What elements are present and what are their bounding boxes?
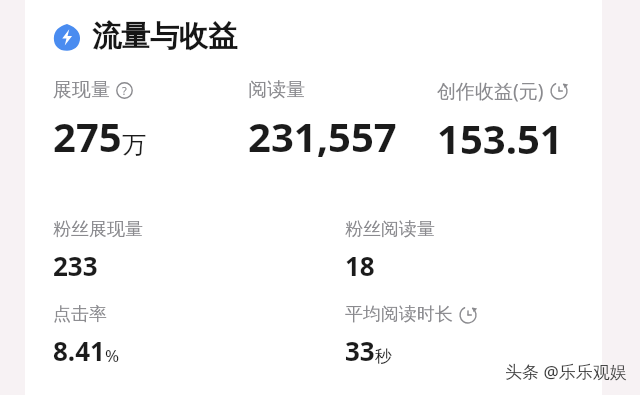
button[interactable]: Traffic and earnings <box>53 18 237 55</box>
staticText: 阅读量 <box>248 78 305 102</box>
button[interactable]: Help <box>116 82 133 99</box>
button[interactable]: 粉丝展现量 <box>53 218 143 283</box>
staticText: 秒 <box>375 346 392 367</box>
button[interactable]: History <box>459 306 477 324</box>
staticText: 18 <box>345 248 375 283</box>
staticText: 153.51 <box>437 111 563 165</box>
button[interactable]: 平均阅读时长 <box>345 303 477 368</box>
staticText: 创作收益(元) <box>437 78 544 104</box>
staticText: 平均阅读时长 <box>345 303 453 326</box>
staticText: 粉丝展现量 <box>53 218 143 241</box>
staticText: 231,557 <box>248 109 397 163</box>
staticText: % <box>105 344 120 367</box>
staticText: 流量与收益 <box>92 18 237 55</box>
staticText: 275 <box>53 109 122 163</box>
staticText: 点击率 <box>53 303 107 326</box>
button[interactable]: 粉丝阅读量 <box>345 218 435 283</box>
staticText: 万 <box>122 130 146 160</box>
staticText: ? <box>122 83 127 98</box>
staticText: 展现量 <box>53 78 110 102</box>
button[interactable]: 展现量 <box>53 78 146 163</box>
button[interactable]: 阅读量 <box>248 78 397 163</box>
staticText: 粉丝阅读量 <box>345 218 435 241</box>
staticText: 33 <box>345 333 375 368</box>
button[interactable]: History <box>550 82 568 100</box>
staticText: 8.41 <box>53 333 105 368</box>
button[interactable]: 点击率 <box>53 303 120 368</box>
button[interactable]: 创作收益(元) <box>437 78 568 165</box>
staticText: 233 <box>53 248 98 283</box>
other: Traffic and earnings <box>53 23 81 51</box>
staticText: 头条 @乐乐观娱 <box>505 360 627 383</box>
